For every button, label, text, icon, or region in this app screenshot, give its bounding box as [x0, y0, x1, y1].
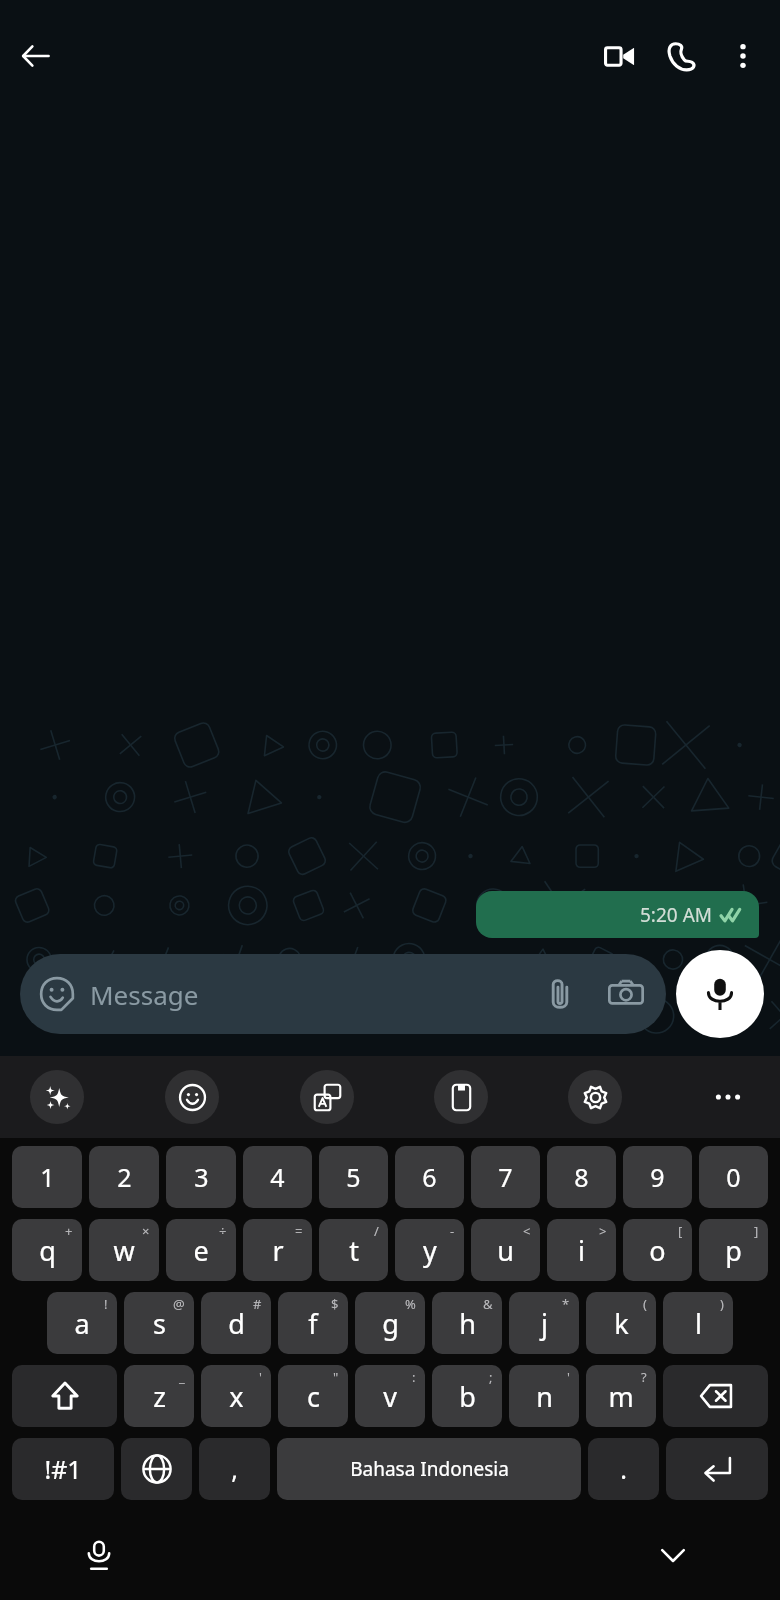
staticText: ×: [142, 1222, 150, 1240]
staticText: %: [405, 1295, 416, 1313]
button[interactable]: e: [166, 1219, 236, 1281]
button[interactable]: Voice call: [650, 25, 712, 87]
staticText: d: [228, 1305, 245, 1342]
button[interactable]: m: [586, 1365, 656, 1427]
staticText: x: [229, 1378, 244, 1415]
staticText: 6: [422, 1160, 437, 1194]
staticText: i: [578, 1232, 585, 1269]
staticText: q: [39, 1232, 56, 1269]
staticText: >: [599, 1222, 607, 1240]
staticText: -: [450, 1222, 455, 1240]
staticText: 2: [117, 1160, 132, 1194]
staticText: !#1: [44, 1452, 82, 1486]
button[interactable]: backspace: [663, 1365, 768, 1427]
staticText: e: [193, 1232, 209, 1269]
button[interactable]: u: [471, 1219, 540, 1281]
button[interactable]: c: [278, 1365, 348, 1427]
button[interactable]: Translate: [300, 1070, 354, 1124]
button[interactable]: p: [699, 1219, 768, 1281]
staticText: :: [412, 1368, 416, 1386]
button[interactable]: a: [47, 1292, 117, 1354]
button[interactable]: Voice message: [676, 950, 764, 1038]
button[interactable]: More: [702, 1071, 754, 1123]
staticText: n: [536, 1378, 553, 1415]
button[interactable]: x: [201, 1365, 271, 1427]
staticText: b: [459, 1378, 476, 1415]
button[interactable]: f: [278, 1292, 348, 1354]
staticText: c: [307, 1378, 320, 1415]
button[interactable]: v: [355, 1365, 425, 1427]
button[interactable]: Back: [8, 28, 64, 84]
staticText: 1: [40, 1160, 55, 1194]
button[interactable]: globe: [121, 1438, 192, 1500]
button[interactable]: 2: [89, 1146, 159, 1208]
button[interactable]: ,: [199, 1438, 270, 1500]
staticText: 3: [194, 1160, 209, 1194]
button[interactable]: l: [663, 1292, 733, 1354]
staticText: j: [541, 1305, 548, 1342]
button[interactable]: d: [201, 1292, 271, 1354]
staticText: 7: [498, 1160, 513, 1194]
button[interactable]: Video call: [588, 25, 650, 87]
button[interactable]: .: [588, 1438, 659, 1500]
button[interactable]: Camera: [604, 972, 648, 1016]
button[interactable]: 8: [547, 1146, 616, 1208]
button[interactable]: Sticker: [20, 954, 666, 1034]
staticText: z: [153, 1378, 166, 1415]
button[interactable]: 3: [166, 1146, 236, 1208]
staticText: t: [349, 1232, 359, 1269]
staticText: 4: [270, 1160, 285, 1194]
button[interactable]: Hide keyboard: [644, 1526, 702, 1584]
button[interactable]: y: [395, 1219, 464, 1281]
button[interactable]: shift: [12, 1365, 117, 1427]
button[interactable]: Emoji: [165, 1070, 219, 1124]
button[interactable]: b: [432, 1365, 502, 1427]
button[interactable]: !#1: [12, 1438, 114, 1500]
button[interactable]: q: [12, 1219, 82, 1281]
staticText: ": [333, 1368, 339, 1386]
staticText: [: [678, 1222, 683, 1240]
button[interactable]: 5:20 AM: [476, 891, 759, 938]
button[interactable]: w: [89, 1219, 159, 1281]
staticText: _: [179, 1368, 185, 1386]
button[interactable]: 4: [243, 1146, 312, 1208]
button[interactable]: Clipboard: [434, 1070, 488, 1124]
button[interactable]: AI assist: [30, 1070, 84, 1124]
button[interactable]: Attach: [538, 972, 582, 1016]
button[interactable]: 7: [471, 1146, 540, 1208]
button[interactable]: s: [124, 1292, 194, 1354]
button[interactable]: r: [243, 1219, 312, 1281]
staticText: a: [74, 1305, 90, 1342]
button[interactable]: 5: [319, 1146, 388, 1208]
staticText: ': [567, 1368, 570, 1386]
button[interactable]: g: [355, 1292, 425, 1354]
button[interactable]: More options: [712, 25, 774, 87]
staticText: (: [643, 1295, 647, 1313]
button[interactable]: 1: [12, 1146, 82, 1208]
staticText: k: [614, 1305, 629, 1342]
button[interactable]: n: [509, 1365, 579, 1427]
button[interactable]: 6: [395, 1146, 464, 1208]
button[interactable]: h: [432, 1292, 502, 1354]
button[interactable]: Settings: [568, 1070, 622, 1124]
button[interactable]: 0: [699, 1146, 768, 1208]
button[interactable]: Sticker: [38, 975, 76, 1013]
staticText: 5: [346, 1160, 361, 1194]
button[interactable]: 9: [623, 1146, 692, 1208]
button[interactable]: Bahasa Indonesia: [277, 1438, 581, 1500]
button[interactable]: z: [124, 1365, 194, 1427]
staticText: v: [383, 1378, 397, 1415]
staticText: $: [331, 1295, 339, 1313]
staticText: ,: [231, 1452, 238, 1486]
staticText: *: [562, 1295, 570, 1313]
button[interactable]: k: [586, 1292, 656, 1354]
staticText: ': [259, 1368, 262, 1386]
button[interactable]: o: [623, 1219, 692, 1281]
button[interactable]: i: [547, 1219, 616, 1281]
button[interactable]: Voice input: [70, 1526, 128, 1584]
button[interactable]: enter: [666, 1438, 768, 1500]
button[interactable]: t: [319, 1219, 388, 1281]
staticText: u: [497, 1232, 514, 1269]
button[interactable]: j: [509, 1292, 579, 1354]
staticText: r: [272, 1232, 284, 1269]
